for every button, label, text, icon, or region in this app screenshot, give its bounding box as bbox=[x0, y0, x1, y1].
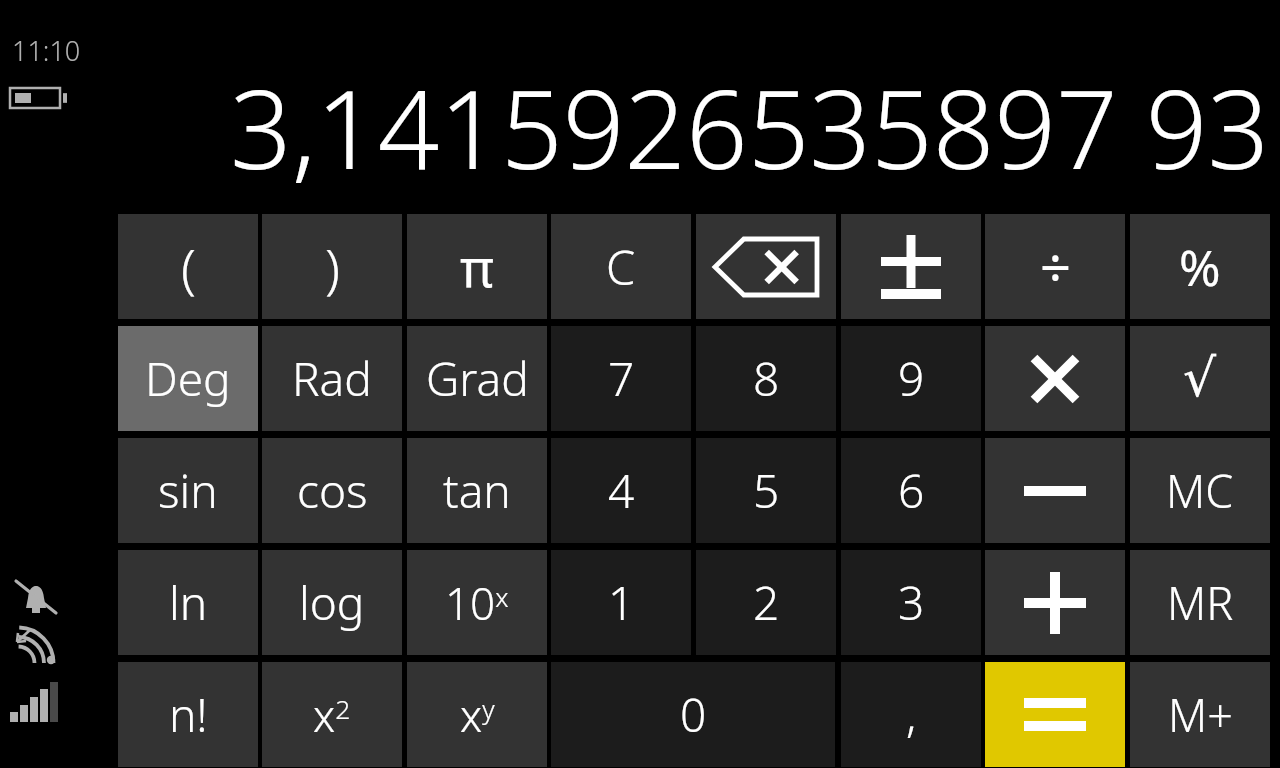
button[interactable]: 2 bbox=[696, 550, 836, 655]
staticText: 2 bbox=[753, 571, 780, 634]
button[interactable]: Deg bbox=[118, 326, 258, 431]
staticText: 3 bbox=[898, 571, 925, 634]
button[interactable]: ÷ bbox=[985, 214, 1125, 319]
staticText: % bbox=[1179, 233, 1221, 301]
staticText: 10x bbox=[445, 573, 509, 633]
button[interactable]: Backspace bbox=[696, 214, 836, 319]
button[interactable]: Minus bbox=[985, 438, 1125, 543]
staticText: ÷ bbox=[1040, 230, 1071, 304]
button[interactable]: % bbox=[1130, 214, 1270, 319]
button[interactable]: MC bbox=[1130, 438, 1270, 543]
staticText: tan bbox=[443, 459, 511, 522]
button[interactable]: 1 bbox=[551, 550, 691, 655]
staticText: 9 bbox=[898, 347, 925, 410]
staticText: ( bbox=[181, 230, 196, 304]
staticText: √ bbox=[1183, 348, 1217, 409]
staticText: MC bbox=[1166, 460, 1234, 521]
button[interactable]: π bbox=[407, 214, 547, 319]
staticText: M+ bbox=[1168, 684, 1233, 745]
staticText: 11:10 bbox=[12, 32, 81, 69]
button[interactable]: Plus bbox=[985, 550, 1125, 655]
button[interactable]: x2 bbox=[262, 662, 402, 767]
staticText: 3,1415926535897 93 bbox=[230, 54, 1270, 201]
button[interactable]: ( bbox=[118, 214, 258, 319]
button[interactable]: Plus minus bbox=[841, 214, 981, 319]
button[interactable]: 5 bbox=[696, 438, 836, 543]
button[interactable]: MR bbox=[1130, 550, 1270, 655]
staticText: Rad bbox=[292, 347, 372, 410]
button[interactable]: Equals bbox=[985, 662, 1125, 767]
staticText: ) bbox=[325, 230, 340, 304]
button[interactable]: M+ bbox=[1130, 662, 1270, 767]
staticText: π bbox=[460, 231, 494, 302]
staticText: xy bbox=[460, 685, 495, 745]
button[interactable]: Multiply bbox=[985, 326, 1125, 431]
staticText: Deg bbox=[145, 347, 231, 410]
button[interactable]: sin bbox=[118, 438, 258, 543]
button[interactable]: Grad bbox=[407, 326, 547, 431]
button[interactable]: tan bbox=[407, 438, 547, 543]
button[interactable]: , bbox=[841, 662, 981, 767]
staticText: 6 bbox=[898, 459, 925, 522]
staticText: 8 bbox=[753, 347, 780, 410]
staticText: 5 bbox=[753, 459, 780, 522]
button[interactable]: 6 bbox=[841, 438, 981, 543]
staticText: 7 bbox=[608, 347, 635, 410]
staticText: ln bbox=[169, 571, 208, 634]
button[interactable]: log bbox=[262, 550, 402, 655]
button[interactable]: 4 bbox=[551, 438, 691, 543]
staticText: C bbox=[606, 235, 636, 299]
button[interactable]: ln bbox=[118, 550, 258, 655]
staticText: 0 bbox=[680, 683, 707, 746]
button[interactable]: Rad bbox=[262, 326, 402, 431]
button[interactable]: 9 bbox=[841, 326, 981, 431]
staticText: , bbox=[906, 683, 917, 746]
staticText: Grad bbox=[426, 347, 529, 410]
button[interactable]: 3 bbox=[841, 550, 981, 655]
staticText: log bbox=[299, 571, 365, 634]
staticText: MR bbox=[1167, 572, 1234, 633]
staticText: cos bbox=[297, 459, 368, 522]
staticText: x2 bbox=[313, 685, 351, 745]
button[interactable]: 0 bbox=[551, 662, 835, 767]
staticText: n! bbox=[169, 683, 208, 746]
button[interactable]: 7 bbox=[551, 326, 691, 431]
staticText: 4 bbox=[608, 459, 635, 522]
button[interactable]: √ bbox=[1130, 326, 1270, 431]
button[interactable]: 10x bbox=[407, 550, 547, 655]
button[interactable]: xy bbox=[407, 662, 547, 767]
button[interactable]: ) bbox=[262, 214, 402, 319]
button[interactable]: n! bbox=[118, 662, 258, 767]
staticText: sin bbox=[158, 459, 218, 522]
button[interactable]: C bbox=[551, 214, 691, 319]
button[interactable]: cos bbox=[262, 438, 402, 543]
button[interactable]: 8 bbox=[696, 326, 836, 431]
staticText: 1 bbox=[608, 571, 635, 634]
